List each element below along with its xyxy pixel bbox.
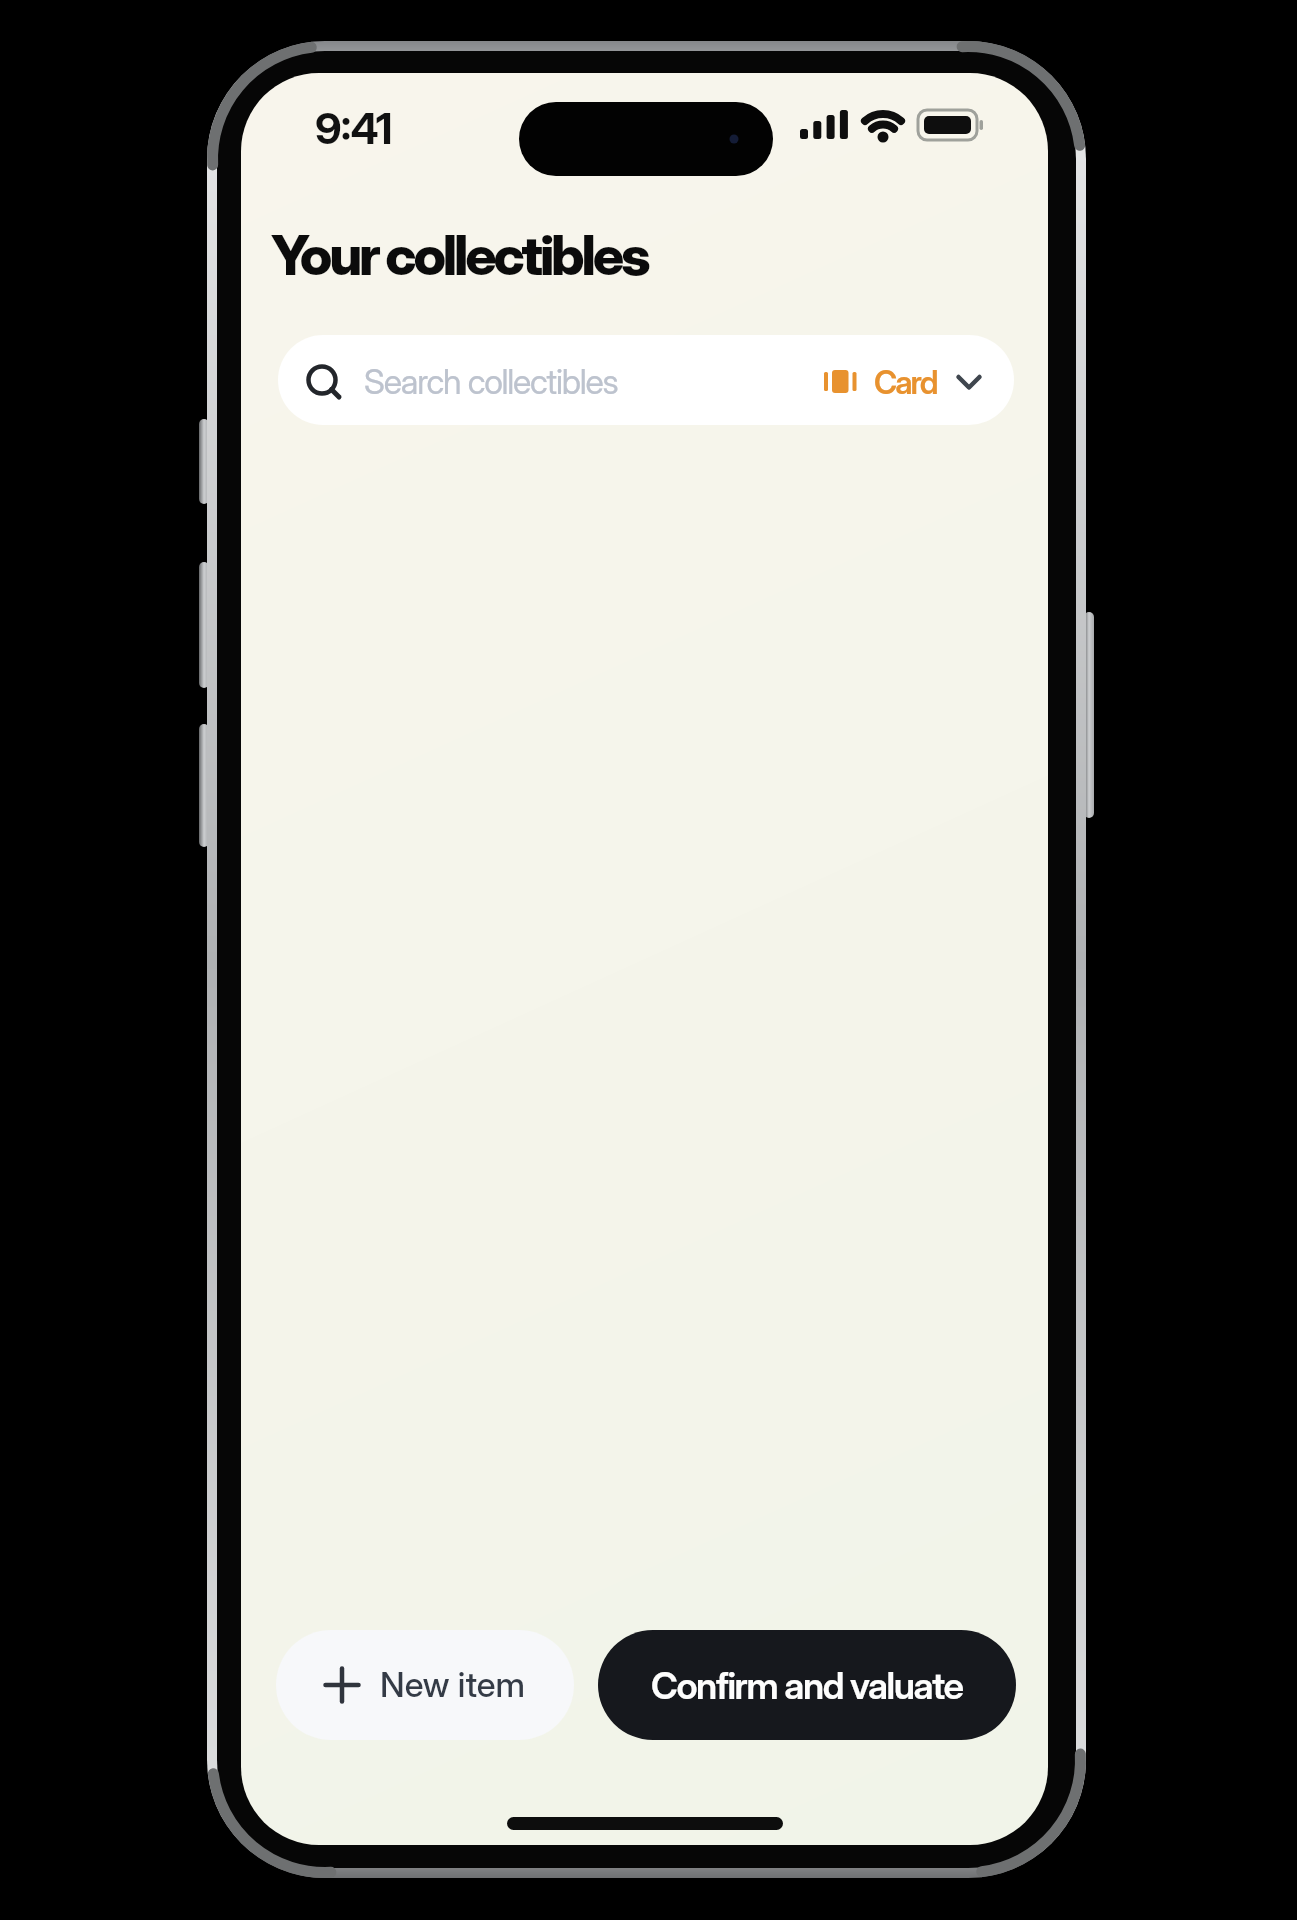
staticText: Search collectibles [364,361,618,402]
staticText: New item [380,1664,525,1706]
button[interactable]: Card [804,335,1014,425]
staticText: 9:41 [315,102,392,154]
staticText: Card [874,363,937,402]
button[interactable]: New item [276,1630,574,1740]
staticText: Your collectibles [271,222,648,289]
button[interactable]: Search collectibles [278,335,1014,425]
button[interactable]: Confirm and valuate [598,1630,1016,1740]
staticText: Confirm and valuate [651,1663,963,1708]
